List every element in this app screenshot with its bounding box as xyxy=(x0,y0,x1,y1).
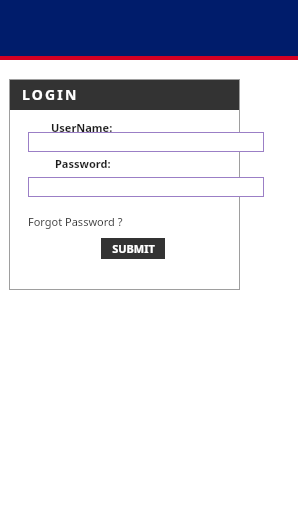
staticText: UserName: xyxy=(51,120,113,135)
button[interactable]: Password input xyxy=(28,177,264,197)
staticText: SUBMIT xyxy=(112,241,155,256)
staticText: Password: xyxy=(55,156,111,171)
staticText: LOGIN xyxy=(22,85,79,104)
staticText: Forgot Password ? xyxy=(28,214,123,229)
button[interactable]: Forgot Password ? xyxy=(28,213,123,230)
button[interactable]: SUBMIT xyxy=(101,238,165,259)
button[interactable]: UserName input xyxy=(28,132,264,152)
